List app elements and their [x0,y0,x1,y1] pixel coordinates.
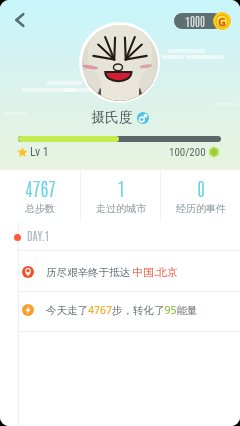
staticText: 历尽艰辛终于抵达 中国.北京 [46,265,178,279]
button[interactable]: 历尽艰辛终于抵达 中国.北京 [0,251,240,292]
staticText: 总步数 [25,202,55,215]
button[interactable]: Back [7,7,33,33]
staticText: Lv 1 [30,145,49,159]
staticText: 4767 [25,175,56,200]
staticText: 1000 [185,13,206,29]
staticText: 1 [117,175,125,200]
staticText: G [218,14,226,29]
staticText: 0 [197,175,205,200]
button[interactable]: 1000 [174,13,222,29]
staticText: 今天走了4767步，转化了95能量 [46,303,198,317]
staticText: DAY.1 [27,227,50,243]
staticText: 走过的城市 [96,202,146,215]
button[interactable]: 今天走了4767步，转化了95能量 [0,290,240,330]
staticText: 100/200 [169,146,206,159]
button[interactable]: 0 [161,170,240,222]
button[interactable]: 4767 [0,170,80,222]
button[interactable]: Profile photo [79,22,160,103]
staticText: 摄氏度 [91,109,133,127]
staticText: 经历的事件 [176,202,226,215]
button[interactable]: 1 [81,170,160,222]
